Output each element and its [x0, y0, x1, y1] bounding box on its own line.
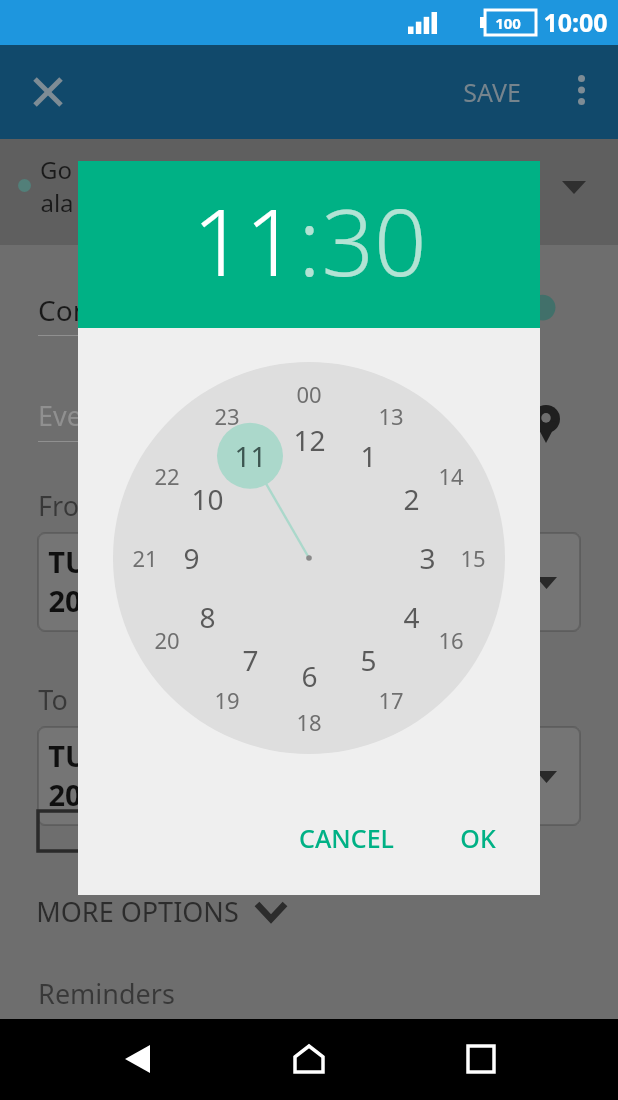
button[interactable]: 17	[357, 677, 425, 723]
button[interactable]: TU	[38, 533, 580, 631]
button[interactable]: All day	[38, 811, 80, 851]
staticText: 20	[48, 581, 82, 620]
staticText: 4	[403, 598, 420, 636]
button[interactable]: 30	[321, 178, 427, 303]
staticText: 11	[234, 437, 267, 475]
button[interactable]: Recents	[456, 1034, 506, 1084]
button[interactable]: 8	[173, 594, 241, 640]
staticText: 14	[438, 461, 464, 491]
staticText: MORE OPTIONS	[36, 893, 239, 930]
button[interactable]: 3	[393, 535, 461, 581]
button[interactable]: OK	[446, 809, 510, 867]
staticText: Go	[40, 153, 72, 186]
staticText: 8	[199, 598, 216, 636]
button[interactable]: 14	[417, 453, 485, 499]
button[interactable]: 16	[417, 617, 485, 663]
button[interactable]: 23	[193, 393, 261, 439]
button[interactable]: 22	[133, 453, 201, 499]
button[interactable]: 20	[133, 617, 201, 663]
staticText: 20	[154, 625, 180, 655]
button[interactable]: 15	[439, 535, 507, 581]
staticText: 22	[154, 461, 180, 491]
staticText: Con	[38, 291, 90, 329]
button[interactable]: SAVE	[440, 67, 544, 117]
staticText: 16	[438, 625, 464, 655]
staticText: 00	[296, 379, 322, 409]
button[interactable]: 00	[275, 371, 343, 417]
staticText: OK	[460, 821, 496, 855]
staticText: TU	[48, 736, 87, 775]
staticText: :	[298, 178, 321, 303]
button[interactable]: Close	[22, 66, 74, 118]
button[interactable]: 9	[157, 535, 225, 581]
button[interactable]: 21	[111, 535, 179, 581]
button[interactable]: 12	[275, 417, 343, 463]
button[interactable]: MORE OPTIONS	[36, 893, 285, 930]
staticText: 9	[183, 539, 200, 577]
button[interactable]: 4	[377, 594, 445, 640]
staticText: 30	[321, 178, 427, 303]
button[interactable]: 19	[193, 677, 261, 723]
button[interactable]: TU	[38, 727, 580, 825]
staticText: 15	[460, 543, 486, 573]
button[interactable]: 1	[334, 433, 402, 479]
staticText: 21	[132, 543, 158, 573]
button[interactable]: 18	[275, 699, 343, 745]
staticText: 17	[378, 685, 404, 715]
button[interactable]: 2	[377, 476, 445, 522]
button[interactable]: CANCEL	[285, 809, 408, 867]
staticText: 23	[214, 401, 240, 431]
button[interactable]: 11	[192, 178, 298, 303]
staticText: TU	[48, 542, 87, 581]
button[interactable]: Home	[284, 1034, 334, 1084]
staticText: 13	[378, 401, 404, 431]
staticText: 6	[301, 657, 318, 695]
staticText: 19	[214, 685, 240, 715]
staticText: 20	[48, 775, 82, 814]
button[interactable]: 10	[173, 476, 241, 522]
staticText: 11	[192, 178, 298, 303]
staticText: 2	[403, 480, 420, 518]
staticText: SAVE	[463, 75, 521, 109]
button[interactable]: 11	[216, 433, 284, 479]
button[interactable]: Back	[112, 1034, 162, 1084]
button[interactable]: 6	[275, 653, 343, 699]
button[interactable]: 7	[216, 637, 284, 683]
staticText: 12	[293, 421, 326, 459]
staticText: Eve	[38, 397, 82, 434]
staticText: 10	[191, 480, 224, 518]
staticText: Reminders	[38, 975, 175, 1012]
staticText: To	[38, 681, 68, 718]
button[interactable]: 5	[334, 637, 402, 683]
button[interactable]: 13	[357, 393, 425, 439]
staticText: 5	[360, 641, 377, 679]
staticText: 18	[296, 707, 322, 737]
staticText: 7	[242, 641, 259, 679]
staticText: CANCEL	[299, 821, 394, 855]
staticText: 10:00	[543, 5, 608, 39]
staticText: Fro	[38, 487, 79, 524]
button[interactable]: More options	[558, 67, 604, 113]
staticText: 3	[419, 539, 436, 577]
staticText: 100	[495, 13, 521, 33]
staticText: 1	[360, 437, 377, 475]
staticText: ala	[40, 186, 74, 219]
